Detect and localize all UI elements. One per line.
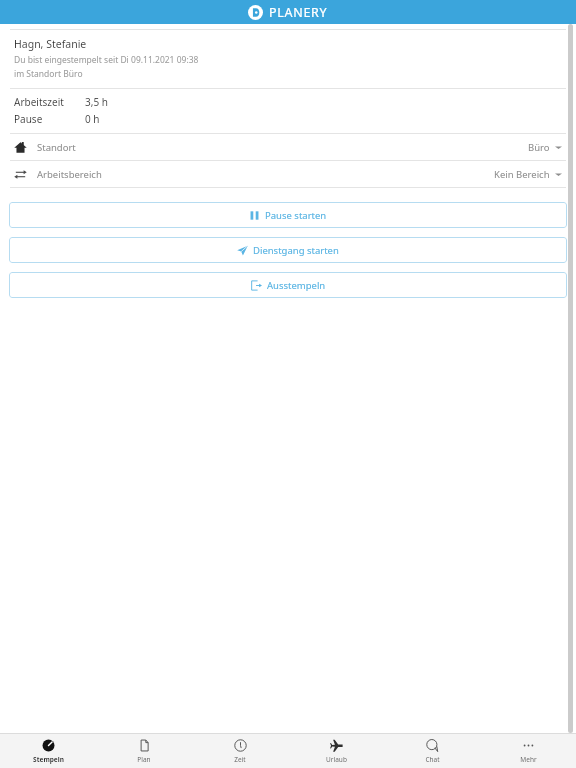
staticText: PLANERY [269, 4, 328, 21]
button[interactable]: Urlaub [288, 734, 384, 768]
staticText: Büro [528, 141, 550, 154]
staticText: Arbeitsbereich [37, 168, 102, 181]
staticText: Hagn, Stefanie [14, 37, 87, 51]
other: Mehr [522, 739, 535, 752]
staticText: Standort [37, 141, 76, 154]
button[interactable]: Plan [96, 734, 192, 768]
other: Stempeln [42, 739, 55, 752]
staticText: Mehr [520, 755, 537, 764]
staticText: Pause [14, 112, 43, 126]
staticText: Zeit [234, 755, 246, 764]
button[interactable]: Standort [0, 134, 576, 160]
button[interactable]: Dienstgang starten [9, 237, 567, 263]
staticText: Pause starten [265, 209, 327, 222]
button[interactable]: Arbeitsbereich [0, 161, 576, 187]
staticText: Plan [137, 755, 151, 764]
button[interactable]: Mehr [480, 734, 576, 768]
staticText: Urlaub [326, 755, 347, 764]
other: Zeit [234, 739, 247, 752]
other: Plan [138, 739, 151, 752]
staticText: 3,5 h [85, 95, 108, 109]
staticText: Kein Bereich [494, 168, 550, 181]
staticText: 0 h [85, 112, 100, 126]
button[interactable]: Chat [384, 734, 480, 768]
button[interactable]: Zeit [192, 734, 288, 768]
staticText: Arbeitszeit [14, 95, 64, 109]
button[interactable]: Ausstempeln [9, 272, 567, 298]
staticText: Stempeln [33, 755, 64, 764]
staticText: Chat [425, 755, 440, 764]
button[interactable]: Stempeln [0, 734, 96, 768]
staticText: Ausstempeln [267, 279, 326, 292]
staticText: Du bist eingestempelt seit Di 09.11.2021… [14, 54, 199, 66]
other: Chat [426, 739, 439, 752]
staticText: Dienstgang starten [253, 244, 339, 257]
button[interactable]: Pause starten [9, 202, 567, 228]
staticText: im Standort Büro [14, 68, 83, 80]
other: Urlaub [330, 739, 343, 752]
